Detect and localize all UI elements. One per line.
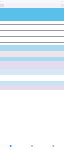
button[interactable]: Tab	[21, 142, 43, 150]
button[interactable]: Row	[0, 33, 64, 39]
button[interactable]: Tab	[43, 142, 64, 150]
button[interactable]: Row	[0, 21, 64, 27]
button[interactable]: Row	[0, 39, 64, 45]
button[interactable]: Tab	[0, 142, 21, 150]
button[interactable]: Row	[0, 27, 64, 33]
